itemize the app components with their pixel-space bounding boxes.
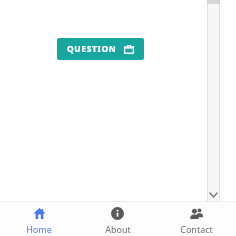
button[interactable]: Scroll down: [207, 189, 220, 201]
button[interactable]: QUESTION: [57, 38, 144, 60]
button[interactable]: Contact: [157, 202, 236, 236]
button[interactable]: About: [78, 202, 157, 236]
button[interactable]: Home: [0, 202, 78, 236]
staticText: Home: [26, 223, 52, 235]
staticText: About: [105, 223, 131, 235]
staticText: QUESTION: [67, 43, 117, 55]
staticText: Contact: [180, 223, 213, 235]
